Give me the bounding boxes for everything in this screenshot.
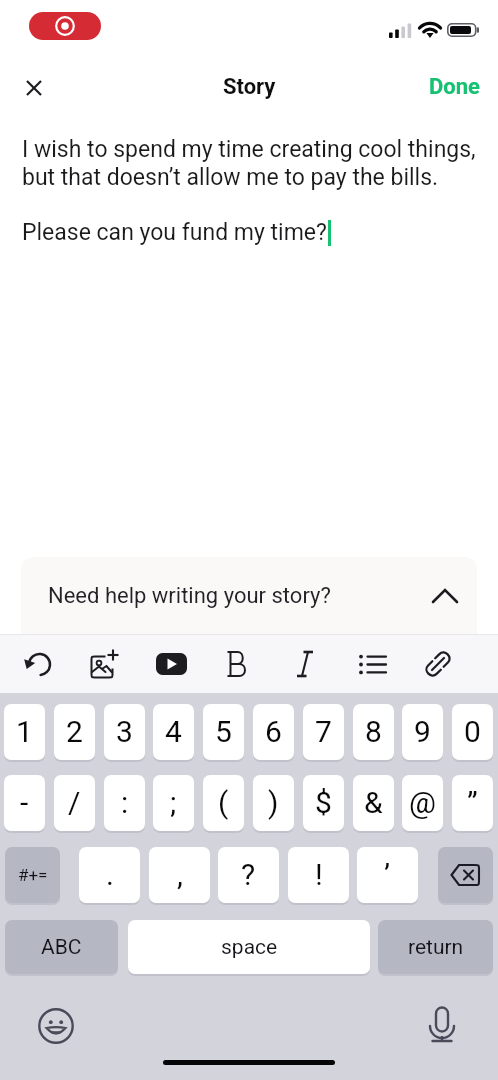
button[interactable]: Recording indicator xyxy=(29,12,101,40)
staticText: I wish to spend my time creating cool th… xyxy=(22,136,476,191)
button[interactable]: @ xyxy=(402,775,443,831)
staticText: , xyxy=(177,857,183,892)
staticText: space xyxy=(221,935,278,960)
staticText: $ xyxy=(315,785,332,820)
staticText: Please can you fund my time? xyxy=(22,219,327,246)
staticText: ? xyxy=(241,857,256,892)
button[interactable]: 5 xyxy=(203,704,244,760)
button[interactable]: Add image xyxy=(82,641,128,687)
button[interactable]: Bullet list xyxy=(349,641,395,687)
staticText: return xyxy=(408,935,464,960)
button[interactable]: 8 xyxy=(353,704,394,760)
button[interactable]: 3 xyxy=(104,704,145,760)
button[interactable]: return xyxy=(378,920,493,974)
staticText: / xyxy=(68,785,81,820)
staticText: ; xyxy=(170,785,177,820)
button[interactable]: $ xyxy=(303,775,344,831)
button[interactable]: , xyxy=(149,847,210,903)
staticText: 9 xyxy=(414,714,431,749)
button[interactable]: space xyxy=(128,920,370,974)
staticText: : xyxy=(121,785,129,820)
button[interactable]: ; xyxy=(153,775,194,831)
staticText: 3 xyxy=(116,714,133,749)
staticText: @ xyxy=(409,785,436,820)
button[interactable]: Italic xyxy=(282,641,328,687)
button[interactable]: ABC xyxy=(5,920,118,974)
staticText: 5 xyxy=(215,714,232,749)
button[interactable]: . xyxy=(79,847,140,903)
button[interactable]: ) xyxy=(253,775,294,831)
button[interactable]: #+= xyxy=(5,847,60,903)
button[interactable]: 9 xyxy=(402,704,443,760)
button[interactable]: 2 xyxy=(54,704,95,760)
staticText: 7 xyxy=(315,714,332,749)
button[interactable]: ? xyxy=(218,847,279,903)
button[interactable]: - xyxy=(4,775,45,831)
button[interactable]: ’ xyxy=(357,847,418,903)
button[interactable]: Emoji keyboard xyxy=(34,1004,78,1048)
button[interactable]: Insert link xyxy=(415,641,461,687)
staticText: Done xyxy=(429,74,480,100)
button[interactable]: 6 xyxy=(253,704,294,760)
staticText: . xyxy=(106,857,114,892)
button[interactable]: Add video xyxy=(148,641,194,687)
staticText: 8 xyxy=(365,714,382,749)
staticText: 0 xyxy=(464,714,481,749)
staticText: & xyxy=(364,785,383,820)
button[interactable]: 0 xyxy=(452,704,493,760)
button[interactable]: ” xyxy=(452,775,493,831)
staticText: 6 xyxy=(265,714,282,749)
button[interactable]: ! xyxy=(288,847,349,903)
staticText: ( xyxy=(218,785,229,820)
button[interactable]: Close xyxy=(14,68,54,108)
staticText: 2 xyxy=(66,714,83,749)
button[interactable]: : xyxy=(104,775,145,831)
staticText: Need help writing your story? xyxy=(48,583,331,609)
staticText: ! xyxy=(315,857,323,892)
button[interactable]: Undo xyxy=(15,641,61,687)
button[interactable]: Bold xyxy=(215,641,261,687)
button[interactable]: Need help writing your story? xyxy=(21,557,477,634)
staticText: ” xyxy=(467,785,478,820)
staticText: - xyxy=(20,785,29,820)
button[interactable]: ( xyxy=(203,775,244,831)
button[interactable]: 1 xyxy=(4,704,45,760)
staticText: 4 xyxy=(165,714,182,749)
staticText: ABC xyxy=(41,935,82,960)
button[interactable]: Backspace xyxy=(438,847,493,903)
button[interactable]: & xyxy=(353,775,394,831)
staticText: 1 xyxy=(16,714,33,749)
button[interactable]: / xyxy=(54,775,95,831)
button[interactable]: Done xyxy=(415,67,498,109)
staticText: ) xyxy=(268,785,279,820)
button[interactable]: 7 xyxy=(303,704,344,760)
button[interactable]: 4 xyxy=(153,704,194,760)
button[interactable]: Dictate xyxy=(420,1002,464,1046)
staticText: ’ xyxy=(384,857,391,892)
staticText: Story xyxy=(223,74,276,100)
staticText: #+= xyxy=(18,865,48,885)
